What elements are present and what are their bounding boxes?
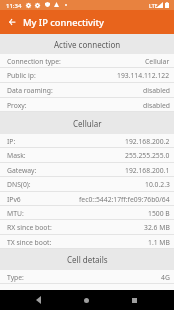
staticText: Connection type: <box>7 57 61 66</box>
staticText: 1500 B <box>148 209 170 218</box>
staticText: DNS(0): <box>7 180 31 189</box>
staticText: Active connection <box>54 39 121 50</box>
staticText: 4G <box>161 273 170 282</box>
staticText: TX since boot: <box>7 238 52 247</box>
button[interactable]: Gateway: <box>0 163 174 177</box>
button[interactable]: Data roaming: <box>0 83 174 98</box>
staticText: 1.1 MB <box>148 238 170 247</box>
button[interactable]: Mask: <box>0 148 174 163</box>
staticText: LTE <box>149 2 158 9</box>
staticText: Mask: <box>7 151 26 160</box>
staticText: 255.255.255.0 <box>125 151 170 160</box>
button[interactable]: Proxy: <box>0 98 174 112</box>
staticText: Proxy: <box>7 101 27 110</box>
button[interactable]: Connection type: <box>0 54 174 68</box>
button[interactable]: Navigate up <box>0 10 24 34</box>
staticText: disabled <box>143 101 170 110</box>
staticText: 32.6 MB <box>144 223 170 232</box>
button[interactable]: Public ip: <box>0 68 174 83</box>
staticText: Gateway: <box>7 166 37 175</box>
staticText: MTU: <box>7 209 24 218</box>
button[interactable]: DNS(0): <box>0 177 174 192</box>
staticText: My IP connectivity <box>23 16 104 29</box>
staticText: 10.0.2.3 <box>145 180 170 189</box>
staticText: 192.168.200.2 <box>125 137 170 146</box>
staticText: 192.168.200.1 <box>125 166 170 175</box>
button[interactable]: Recent apps <box>124 290 145 310</box>
staticText: Public ip: <box>7 71 36 80</box>
button[interactable]: MTU: <box>0 206 174 220</box>
staticText: disabled <box>143 86 170 95</box>
staticText: Type: <box>7 273 24 282</box>
button[interactable]: Home <box>76 290 97 310</box>
staticText: IP: <box>7 137 16 146</box>
button[interactable]: TX since boot: <box>0 235 174 249</box>
button[interactable]: Type: <box>0 270 174 284</box>
staticText: Cellular <box>145 57 170 66</box>
button[interactable]: IP: <box>0 134 174 148</box>
staticText: Data roaming: <box>7 86 53 95</box>
button[interactable]: Back <box>28 290 49 310</box>
staticText: IPv6 <box>7 195 21 204</box>
staticText: Cellular <box>73 118 102 129</box>
button[interactable]: RX since boot: <box>0 220 174 235</box>
staticText: Cell details <box>67 254 108 265</box>
staticText: RX since boot: <box>7 223 52 232</box>
staticText: 193.114.112.122 <box>117 71 170 80</box>
button[interactable]: IPv6 <box>0 192 174 206</box>
staticText: fec0::5442:17ff:fe09:76b0/64 <box>79 195 170 204</box>
staticText: 11:34 <box>6 2 22 10</box>
